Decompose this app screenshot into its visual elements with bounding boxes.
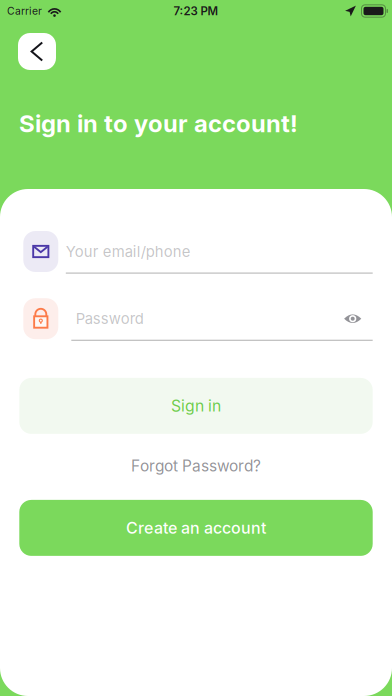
staticText: Your email/phone [66, 242, 191, 260]
button[interactable]: Sign in [19, 378, 373, 434]
staticText: 7:23 PM [173, 4, 218, 18]
button[interactable]: Create an account [19, 500, 373, 556]
button[interactable]: Forgot Password? [19, 450, 373, 482]
button[interactable]: Back [18, 33, 56, 70]
staticText: Carrier [7, 5, 42, 17]
staticText: Create an account [126, 518, 266, 538]
button[interactable]: Show password [339, 305, 367, 333]
staticText: Forgot Password? [131, 456, 261, 475]
staticText: Sign in [171, 396, 221, 415]
staticText: Password [76, 310, 144, 328]
staticText: Sign in to your account! [19, 109, 298, 138]
